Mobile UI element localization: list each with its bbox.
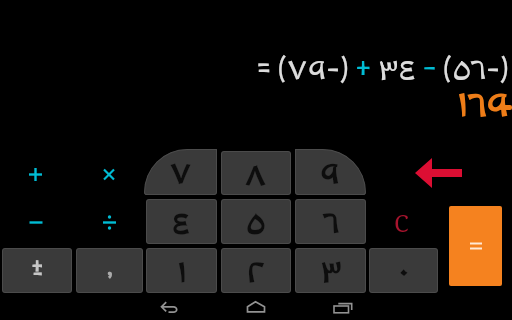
staticText: ٩ <box>320 149 341 195</box>
staticText: ٥ <box>246 199 266 244</box>
button[interactable]: ٦ <box>295 199 366 244</box>
staticText: ٦ <box>322 199 340 244</box>
button[interactable] <box>76 199 143 244</box>
button[interactable] <box>2 199 72 244</box>
staticText: ٢ <box>247 248 265 293</box>
button[interactable]: ٧ <box>144 149 217 195</box>
button[interactable] <box>152 296 186 320</box>
button[interactable] <box>324 296 358 320</box>
staticText: ‭= (٧٩-) + ٣٤ − (٥٦-) <box>257 46 510 98</box>
button[interactable]: ± <box>2 248 72 293</box>
staticText: ٠ <box>398 248 410 293</box>
button[interactable]: C <box>386 204 416 240</box>
button[interactable]: ٢ <box>221 248 291 293</box>
staticText: ٫ <box>107 253 113 288</box>
staticText: C <box>394 206 409 239</box>
button[interactable]: ٫ <box>76 248 143 293</box>
button[interactable]: ١ <box>146 248 217 293</box>
button[interactable]: ٩ <box>295 149 366 195</box>
button[interactable] <box>239 296 273 320</box>
button[interactable] <box>449 206 502 286</box>
staticText: ٨ <box>245 151 267 195</box>
button[interactable]: ٨ <box>221 151 291 195</box>
button[interactable]: ٠ <box>369 248 438 293</box>
staticText: ‭١٦٩ <box>458 76 509 139</box>
staticText: ٧ <box>170 149 192 195</box>
button[interactable]: ٥ <box>221 199 291 244</box>
staticText: ± <box>32 252 43 289</box>
staticText: ١ <box>177 248 187 293</box>
button[interactable] <box>405 150 467 194</box>
button[interactable]: ٣ <box>295 248 366 293</box>
button[interactable]: ٤ <box>146 199 217 244</box>
button[interactable] <box>2 149 72 195</box>
button[interactable] <box>76 149 143 195</box>
staticText: ٤ <box>172 199 191 244</box>
staticText: ٣ <box>320 248 342 293</box>
